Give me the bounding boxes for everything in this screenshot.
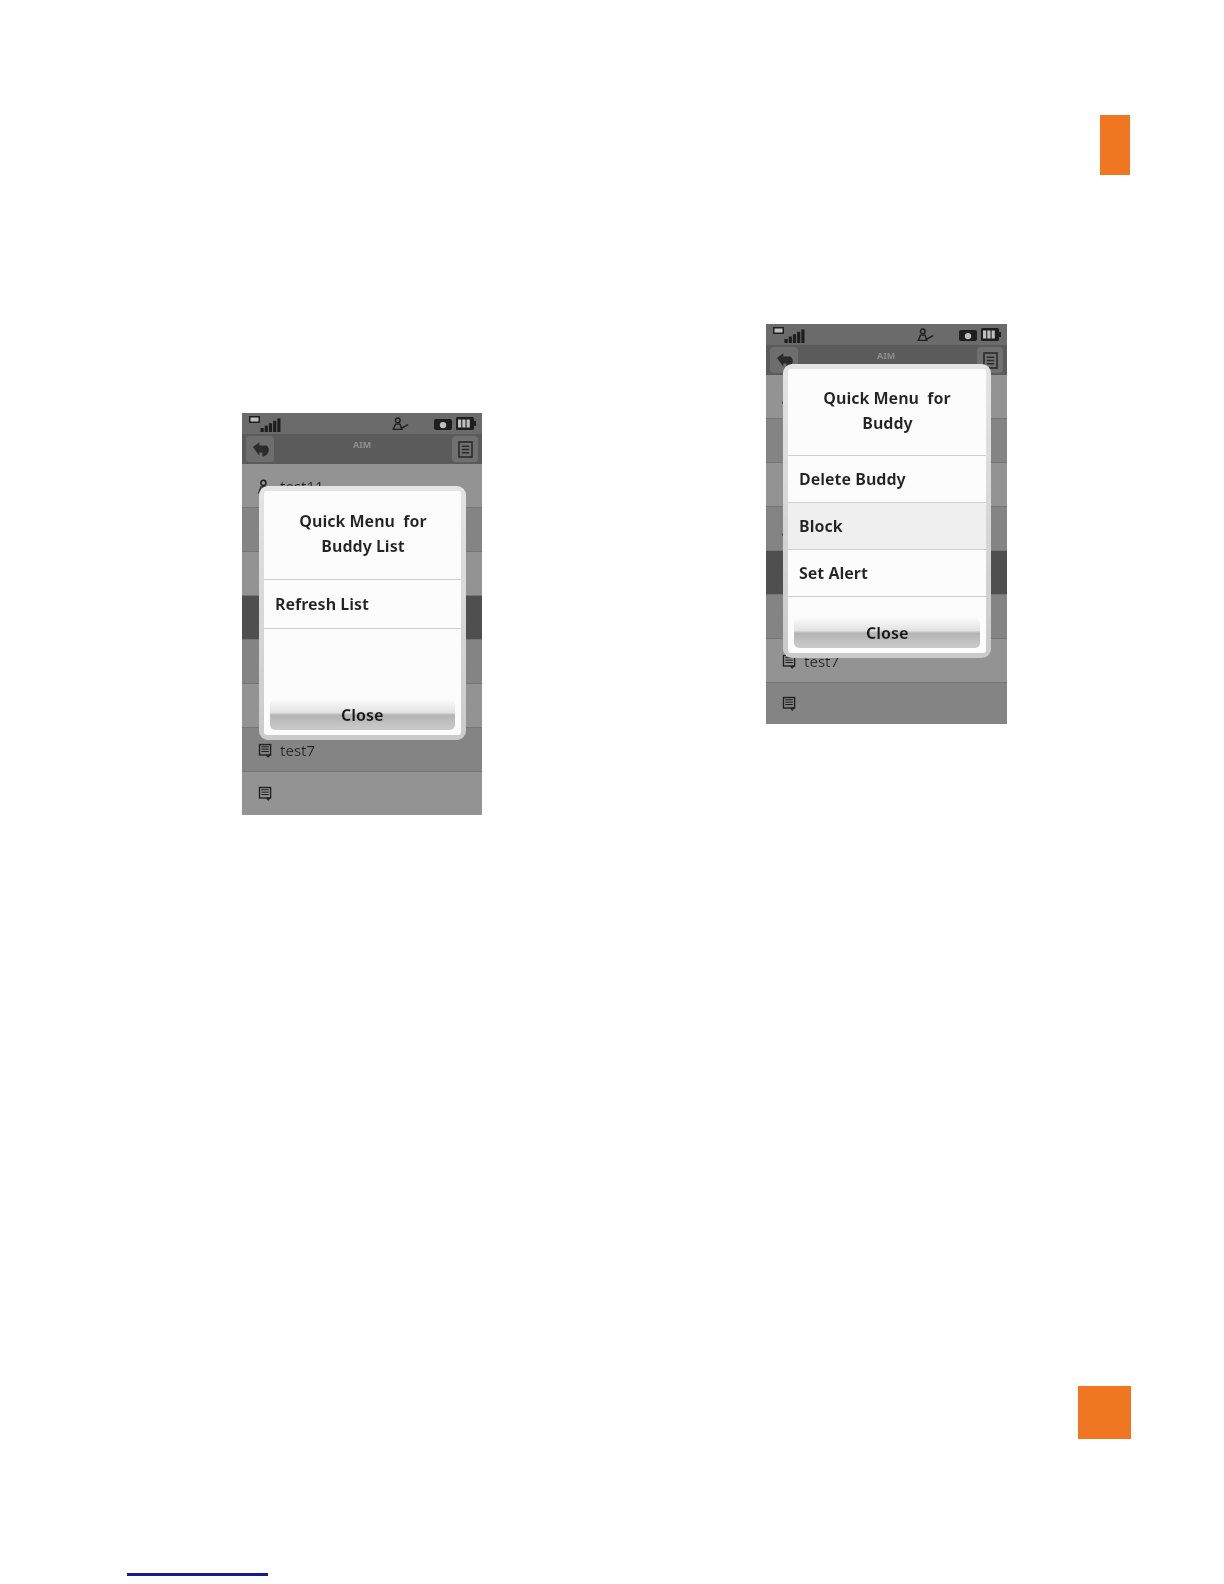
staticText: AIM: [877, 349, 896, 361]
button[interactable]: [242, 508, 482, 551]
staticText: Close: [866, 622, 909, 644]
button[interactable]: test7: [242, 728, 482, 771]
button[interactable]: [242, 552, 482, 595]
staticText: AIM: [353, 438, 372, 450]
button[interactable]: Set Alert: [788, 550, 986, 596]
button[interactable]: [242, 640, 482, 683]
button[interactable]: test7: [766, 639, 1007, 682]
staticText: test7: [280, 740, 316, 760]
staticText: test7: [804, 651, 840, 671]
button[interactable]: [242, 772, 482, 815]
button[interactable]: test11: [242, 464, 482, 507]
button[interactable]: Menu: [977, 347, 1003, 373]
button[interactable]: [766, 419, 1007, 462]
staticText: Quick Menu for: [823, 387, 951, 409]
button[interactable]: [766, 463, 1007, 506]
button[interactable]: Back: [246, 436, 274, 462]
staticText: test11: [280, 476, 324, 496]
button[interactable]: [766, 551, 1007, 594]
button[interactable]: [766, 507, 1007, 550]
button[interactable]: Back: [770, 347, 798, 373]
staticText: Refresh List: [275, 593, 369, 615]
button[interactable]: [766, 595, 1007, 638]
button[interactable]: [242, 684, 482, 727]
button[interactable]: [766, 375, 1007, 418]
button[interactable]: [766, 683, 1007, 724]
button[interactable]: Block: [788, 503, 986, 549]
staticText: Delete Buddy: [799, 468, 906, 490]
button[interactable]: Close: [794, 618, 980, 648]
staticText: Block: [799, 515, 843, 537]
staticText: Buddy: [862, 412, 913, 434]
staticText: Set Alert: [799, 562, 868, 584]
staticText: Quick Menu for: [299, 510, 427, 532]
button[interactable]: Menu: [452, 436, 478, 462]
button[interactable]: Delete Buddy: [788, 456, 986, 502]
button[interactable]: Close: [270, 700, 455, 730]
staticText: Buddy List: [321, 535, 405, 557]
button[interactable]: [242, 596, 482, 639]
staticText: Close: [341, 704, 384, 726]
button[interactable]: Refresh List: [264, 580, 461, 628]
